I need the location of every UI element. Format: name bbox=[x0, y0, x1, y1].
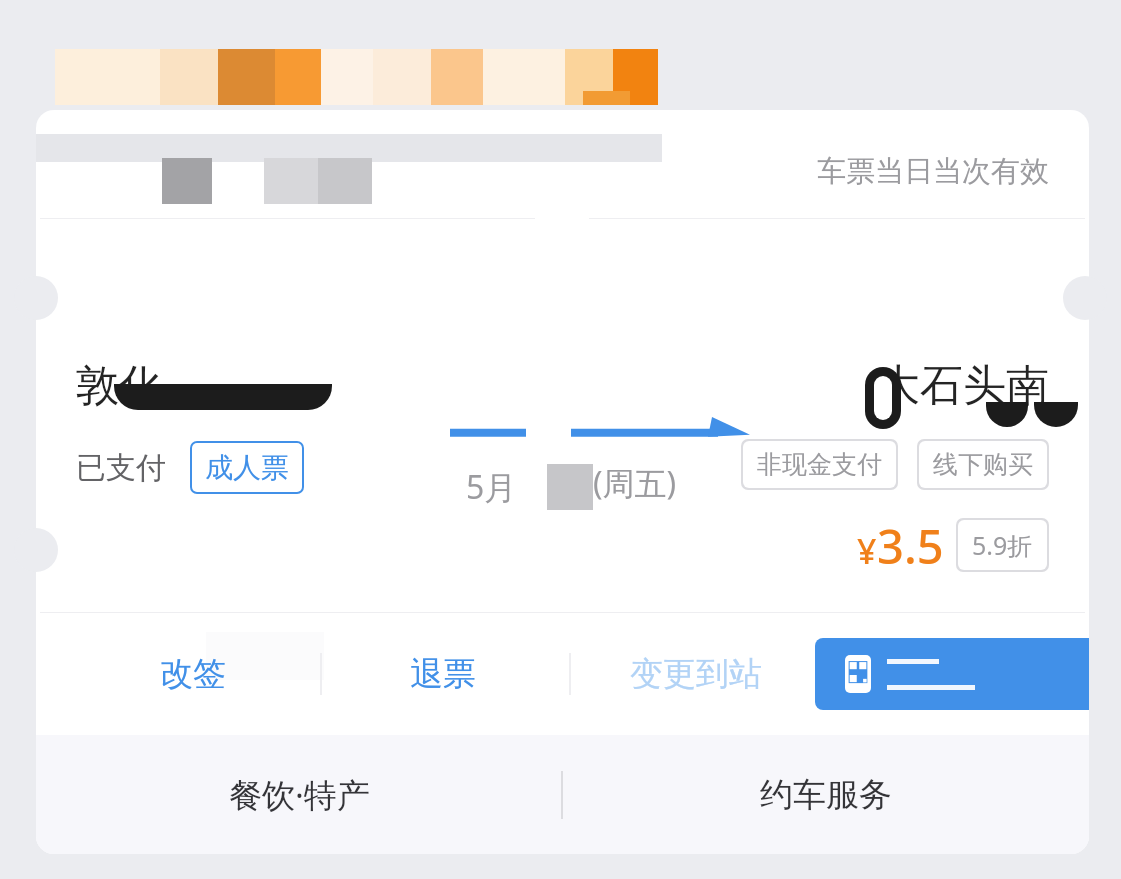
button[interactable]: 改签 bbox=[120, 613, 265, 735]
button[interactable]: 餐饮·特产 bbox=[36, 735, 562, 854]
button[interactable]: 退票 bbox=[370, 613, 515, 735]
staticText: 变更到站 bbox=[630, 653, 762, 695]
staticText: 3.5 bbox=[877, 514, 944, 578]
button[interactable]: 5.9折 bbox=[958, 520, 1047, 570]
staticText: 餐饮·特产 bbox=[229, 772, 370, 817]
button[interactable]: 二维码乘车 bbox=[815, 638, 1089, 710]
staticText: 线下购买 bbox=[933, 449, 1033, 480]
button[interactable]: 成人票 bbox=[192, 443, 302, 492]
button[interactable]: 约车服务 bbox=[563, 735, 1089, 854]
staticText: 退票 bbox=[410, 653, 476, 695]
staticText: 改签 bbox=[160, 653, 226, 695]
staticText: 5月 bbox=[466, 465, 517, 509]
staticText: 成人票 bbox=[205, 450, 289, 485]
staticText: 非现金支付 bbox=[757, 449, 882, 480]
button[interactable]: 线下购买 bbox=[919, 441, 1047, 488]
button[interactable]: 变更到站 bbox=[606, 613, 786, 735]
staticText: 车票当日当次有效 bbox=[817, 153, 1049, 190]
staticText: 约车服务 bbox=[760, 774, 892, 816]
staticText: 5.9折 bbox=[972, 528, 1033, 562]
staticText: 已支付 bbox=[76, 449, 166, 487]
staticText: 敦化 bbox=[76, 359, 162, 413]
staticText: 大石头南 bbox=[877, 359, 1049, 413]
button[interactable]: 非现金支付 bbox=[743, 441, 896, 488]
staticText: (周五) bbox=[593, 461, 677, 505]
staticText: ¥ bbox=[857, 528, 877, 574]
